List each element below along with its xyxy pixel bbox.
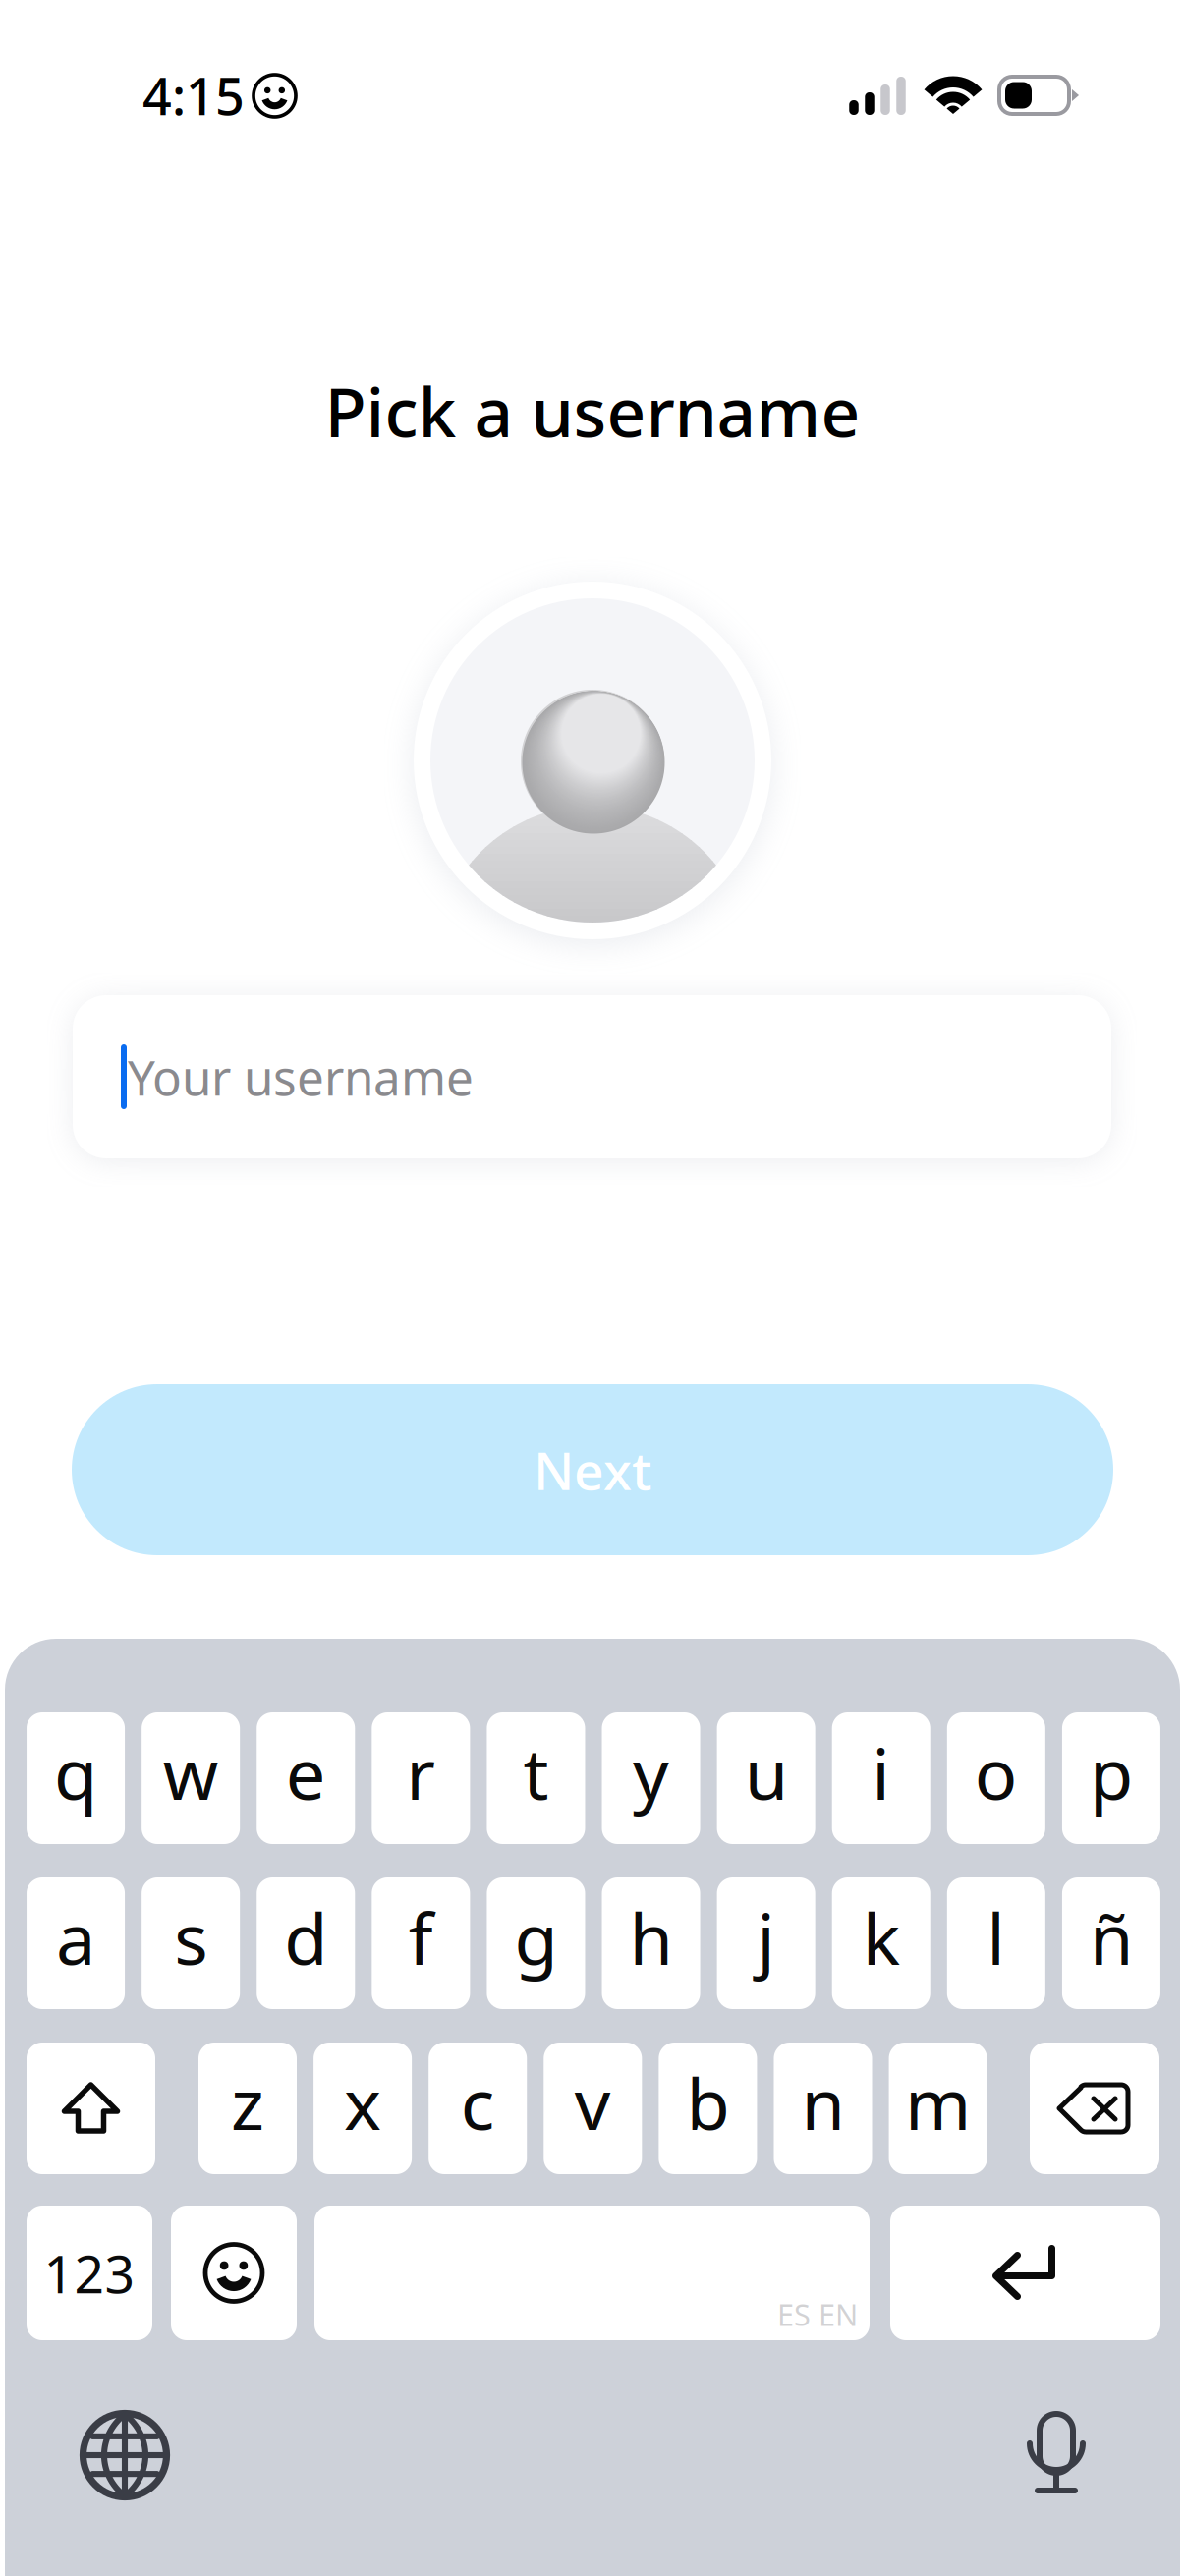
staticText: s [174, 1890, 207, 1984]
button[interactable]: v [544, 2043, 642, 2174]
button[interactable]: b [659, 2043, 757, 2174]
button[interactable]: p [1062, 1712, 1160, 1844]
staticText: Next [534, 1435, 651, 1505]
button[interactable]: q [27, 1712, 125, 1844]
button[interactable]: k [832, 1877, 930, 2009]
button[interactable]: e [257, 1712, 355, 1844]
staticText: 4:15 [142, 61, 245, 129]
button[interactable]: s [142, 1877, 240, 2009]
button[interactable]: z [198, 2043, 297, 2174]
staticText: p [1090, 1725, 1133, 1819]
button[interactable]: Shift [27, 2043, 155, 2174]
staticText: v [575, 2055, 611, 2149]
staticText: g [514, 1890, 558, 1984]
button[interactable]: l [947, 1877, 1045, 2009]
button[interactable]: w [142, 1712, 240, 1844]
staticText: c [461, 2055, 495, 2149]
button[interactable]: x [314, 2043, 412, 2174]
staticText: k [863, 1890, 900, 1984]
staticText: 123 [44, 2238, 135, 2308]
button[interactable]: Next keyboard [83, 2413, 167, 2497]
button[interactable]: i [832, 1712, 930, 1844]
button[interactable]: d [257, 1877, 355, 2009]
button[interactable]: f [372, 1877, 470, 2009]
staticText: ES EN [777, 2294, 858, 2334]
button[interactable]: Return [890, 2206, 1160, 2340]
button[interactable]: ñ [1062, 1877, 1160, 2009]
staticText: q [54, 1725, 97, 1819]
staticText: Your username [128, 1045, 474, 1109]
staticText: m [905, 2055, 971, 2149]
button[interactable]: t [487, 1712, 585, 1844]
staticText: n [801, 2055, 845, 2149]
staticText: t [523, 1725, 549, 1819]
staticText: o [975, 1725, 1018, 1819]
button[interactable]: n [774, 2043, 872, 2174]
button[interactable]: Dictation [1025, 2413, 1088, 2497]
staticText: i [872, 1725, 890, 1819]
staticText: a [56, 1890, 95, 1984]
staticText: f [409, 1890, 433, 1984]
button[interactable]: Emoji [171, 2206, 297, 2340]
button[interactable]: u [717, 1712, 815, 1844]
staticText: d [284, 1890, 327, 1984]
staticText: j [757, 1890, 775, 1984]
staticText: l [987, 1890, 1006, 1984]
staticText: e [286, 1725, 326, 1819]
staticText: h [629, 1890, 673, 1984]
button[interactable]: m [889, 2043, 987, 2174]
button[interactable]: j [717, 1877, 815, 2009]
button[interactable]: r [372, 1712, 470, 1844]
staticText: x [344, 2055, 381, 2149]
staticText: z [231, 2055, 264, 2149]
button[interactable]: a [27, 1877, 125, 2009]
button[interactable]: 123 [27, 2206, 152, 2340]
button[interactable]: y [602, 1712, 700, 1844]
staticText: r [406, 1725, 436, 1819]
button[interactable]: o [947, 1712, 1045, 1844]
button[interactable]: Next [72, 1384, 1113, 1555]
staticText: Pick a username [325, 365, 860, 456]
staticText: b [686, 2055, 729, 2149]
button[interactable]: h [602, 1877, 700, 2009]
button[interactable]: g [487, 1877, 585, 2009]
button[interactable]: ES EN [314, 2206, 870, 2340]
staticText: ñ [1090, 1890, 1133, 1984]
button[interactable]: Delete [1030, 2043, 1159, 2174]
staticText: u [744, 1725, 788, 1819]
staticText: w [163, 1725, 219, 1819]
button[interactable]: c [429, 2043, 527, 2174]
staticText: y [633, 1725, 669, 1819]
